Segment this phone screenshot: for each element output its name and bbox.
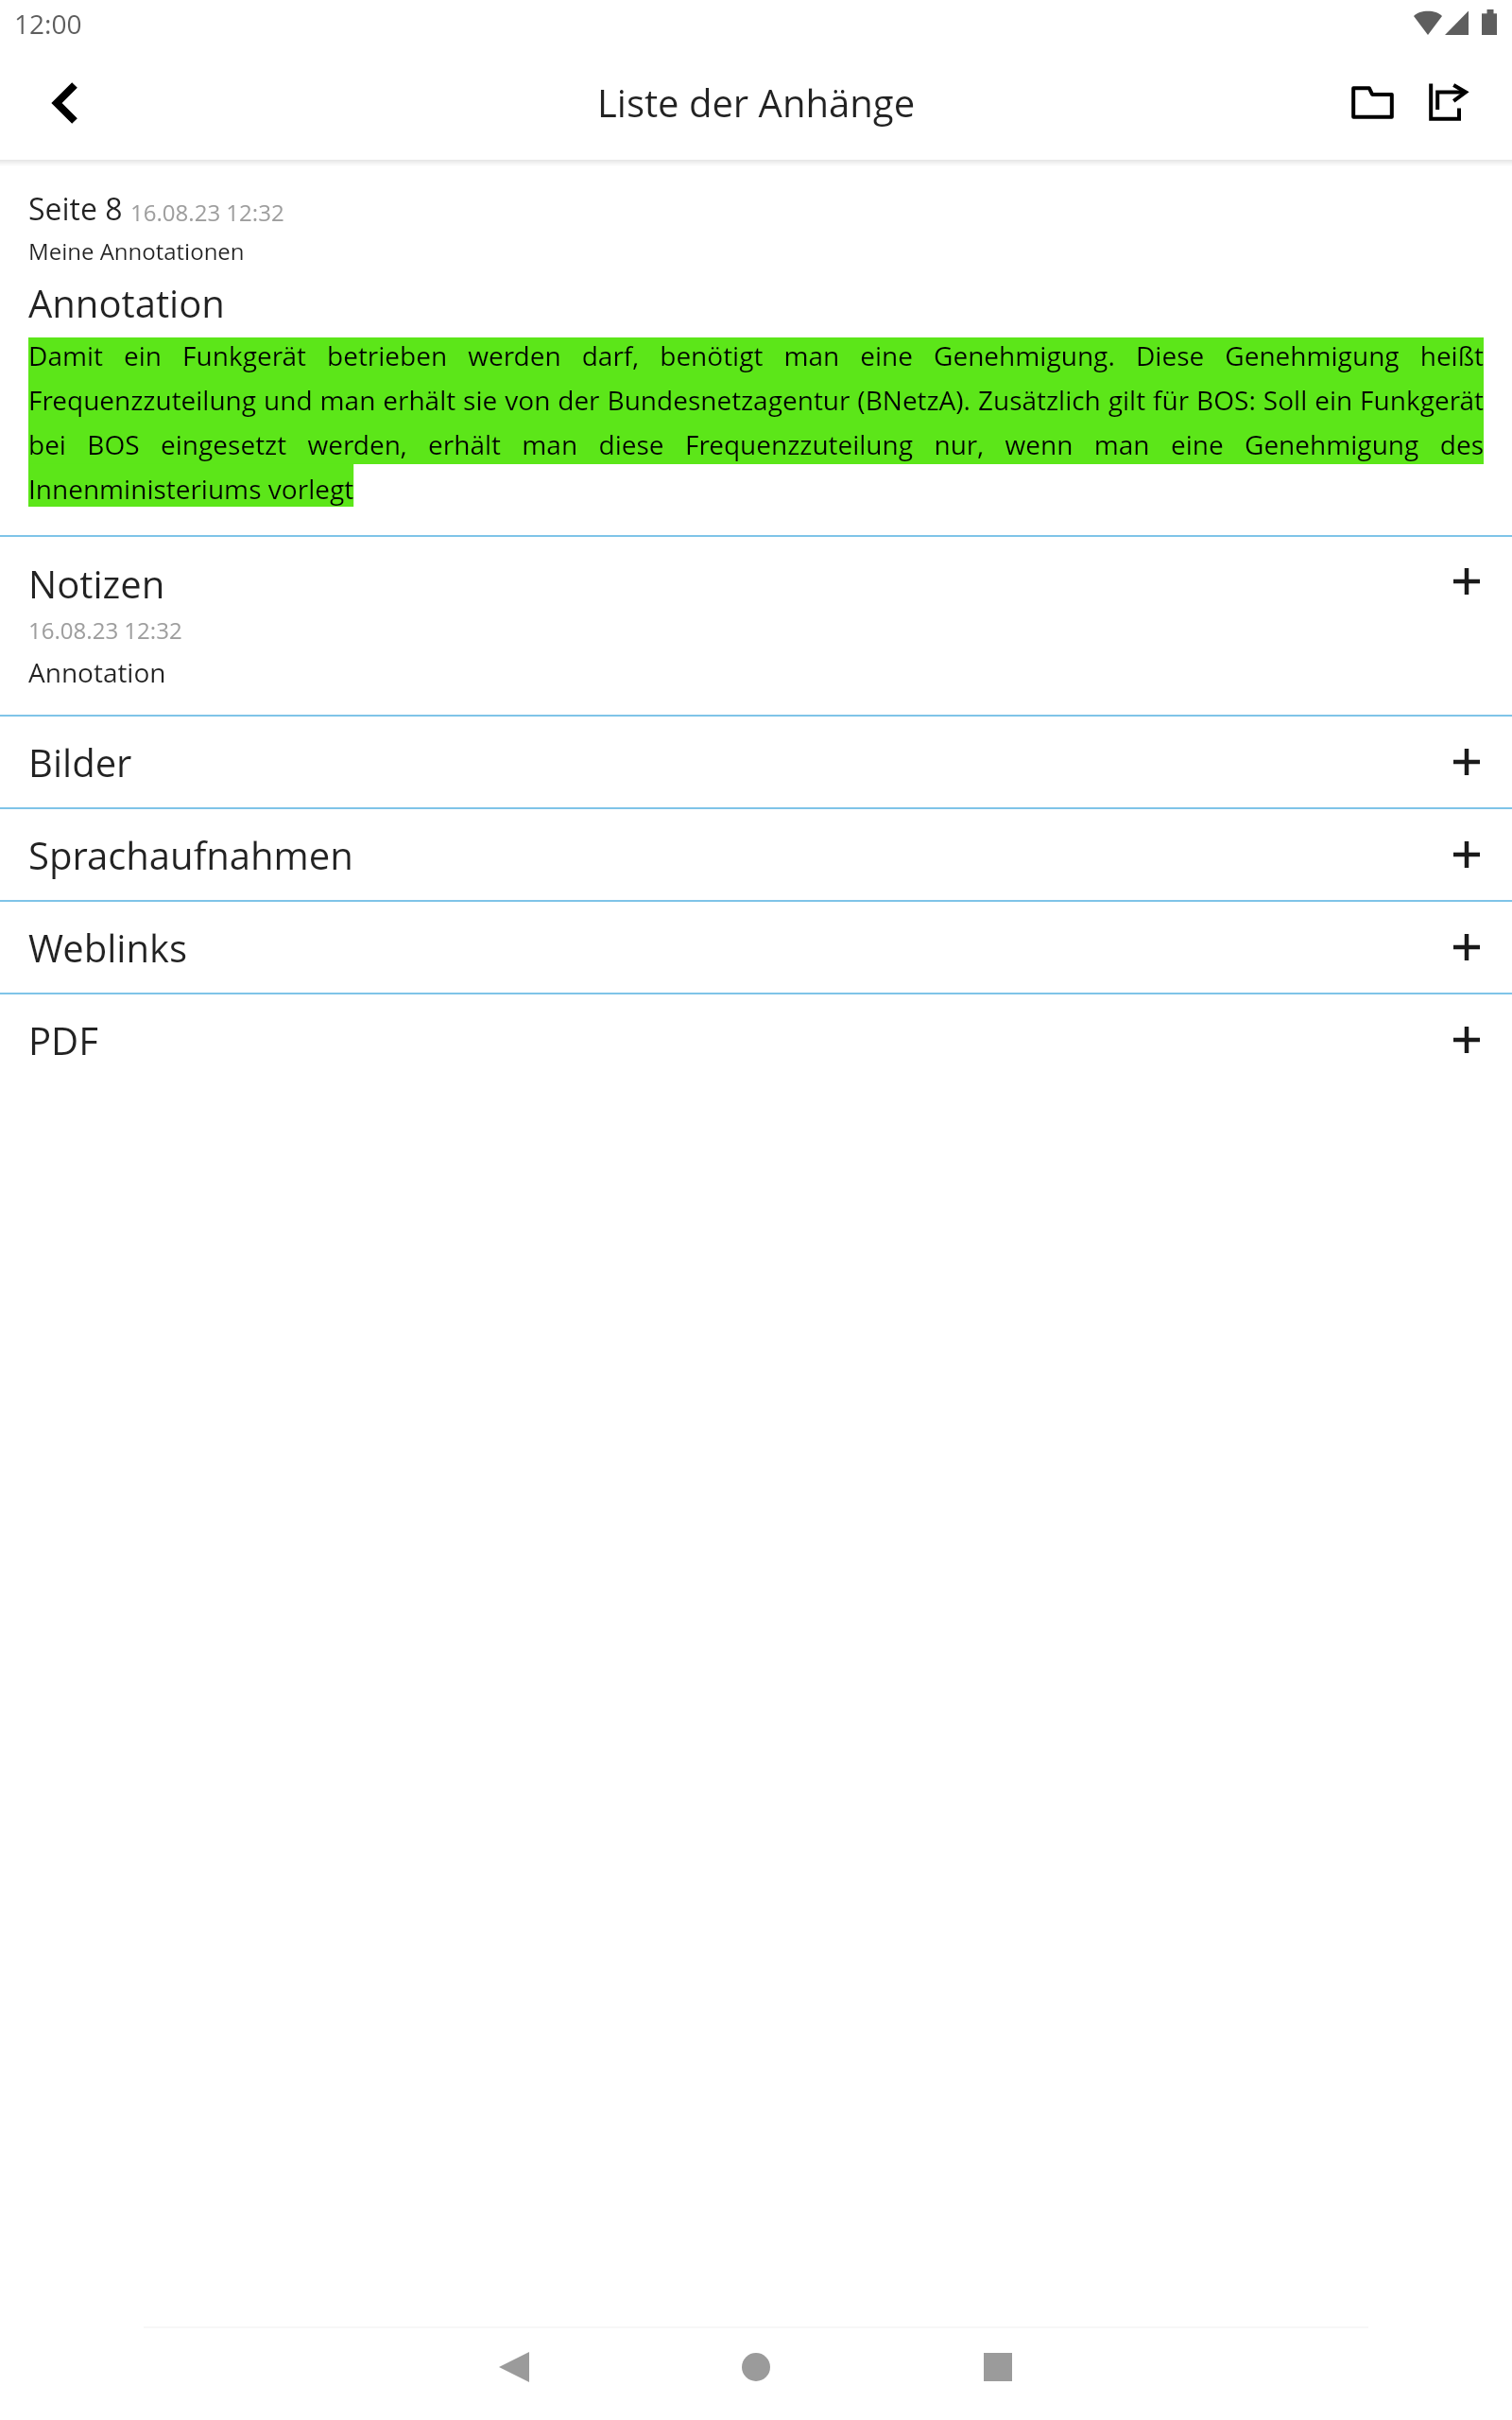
staticText: Liste der Anhänge xyxy=(597,77,916,128)
button[interactable]: Add Sprachaufnahmen xyxy=(1436,824,1497,885)
button[interactable]: Bilder xyxy=(0,717,1512,807)
staticText: 16.08.23 12:32 xyxy=(28,614,182,646)
button[interactable]: Add note xyxy=(1436,551,1497,612)
button[interactable]: Weblinks xyxy=(0,902,1512,993)
button[interactable]: Recents xyxy=(953,2322,1043,2412)
staticText: 12:00 xyxy=(14,6,82,42)
button[interactable]: Add Bilder xyxy=(1436,732,1497,792)
button[interactable]: Sprachaufnahmen xyxy=(0,809,1512,900)
button[interactable]: Open folder xyxy=(1310,57,1416,160)
button[interactable]: PDF xyxy=(0,994,1512,1085)
staticText: Annotation xyxy=(28,277,225,328)
staticText: 16.08.23 12:32 xyxy=(130,197,284,228)
button[interactable]: Add PDF xyxy=(1436,1010,1497,1070)
button[interactable]: Add Weblinks xyxy=(1436,917,1497,977)
staticText: Weblinks xyxy=(28,922,1436,973)
staticText: Seite 8 xyxy=(28,188,123,230)
staticText: Annotation xyxy=(28,654,166,690)
button[interactable]: Home xyxy=(711,2322,801,2412)
button[interactable]: Share xyxy=(1408,57,1487,160)
staticText: Bilder xyxy=(28,736,1436,787)
button[interactable]: Back xyxy=(0,57,127,160)
button[interactable]: Notizen xyxy=(0,537,1512,715)
staticText: Notizen xyxy=(28,558,165,609)
staticText: Sprachaufnahmen xyxy=(28,829,1436,880)
staticText: Damit ein Funkgerät betrieben werden dar… xyxy=(28,337,1484,507)
button[interactable]: Back xyxy=(469,2322,559,2412)
staticText: Meine Annotationen xyxy=(28,235,245,267)
staticText: PDF xyxy=(28,1014,1436,1065)
